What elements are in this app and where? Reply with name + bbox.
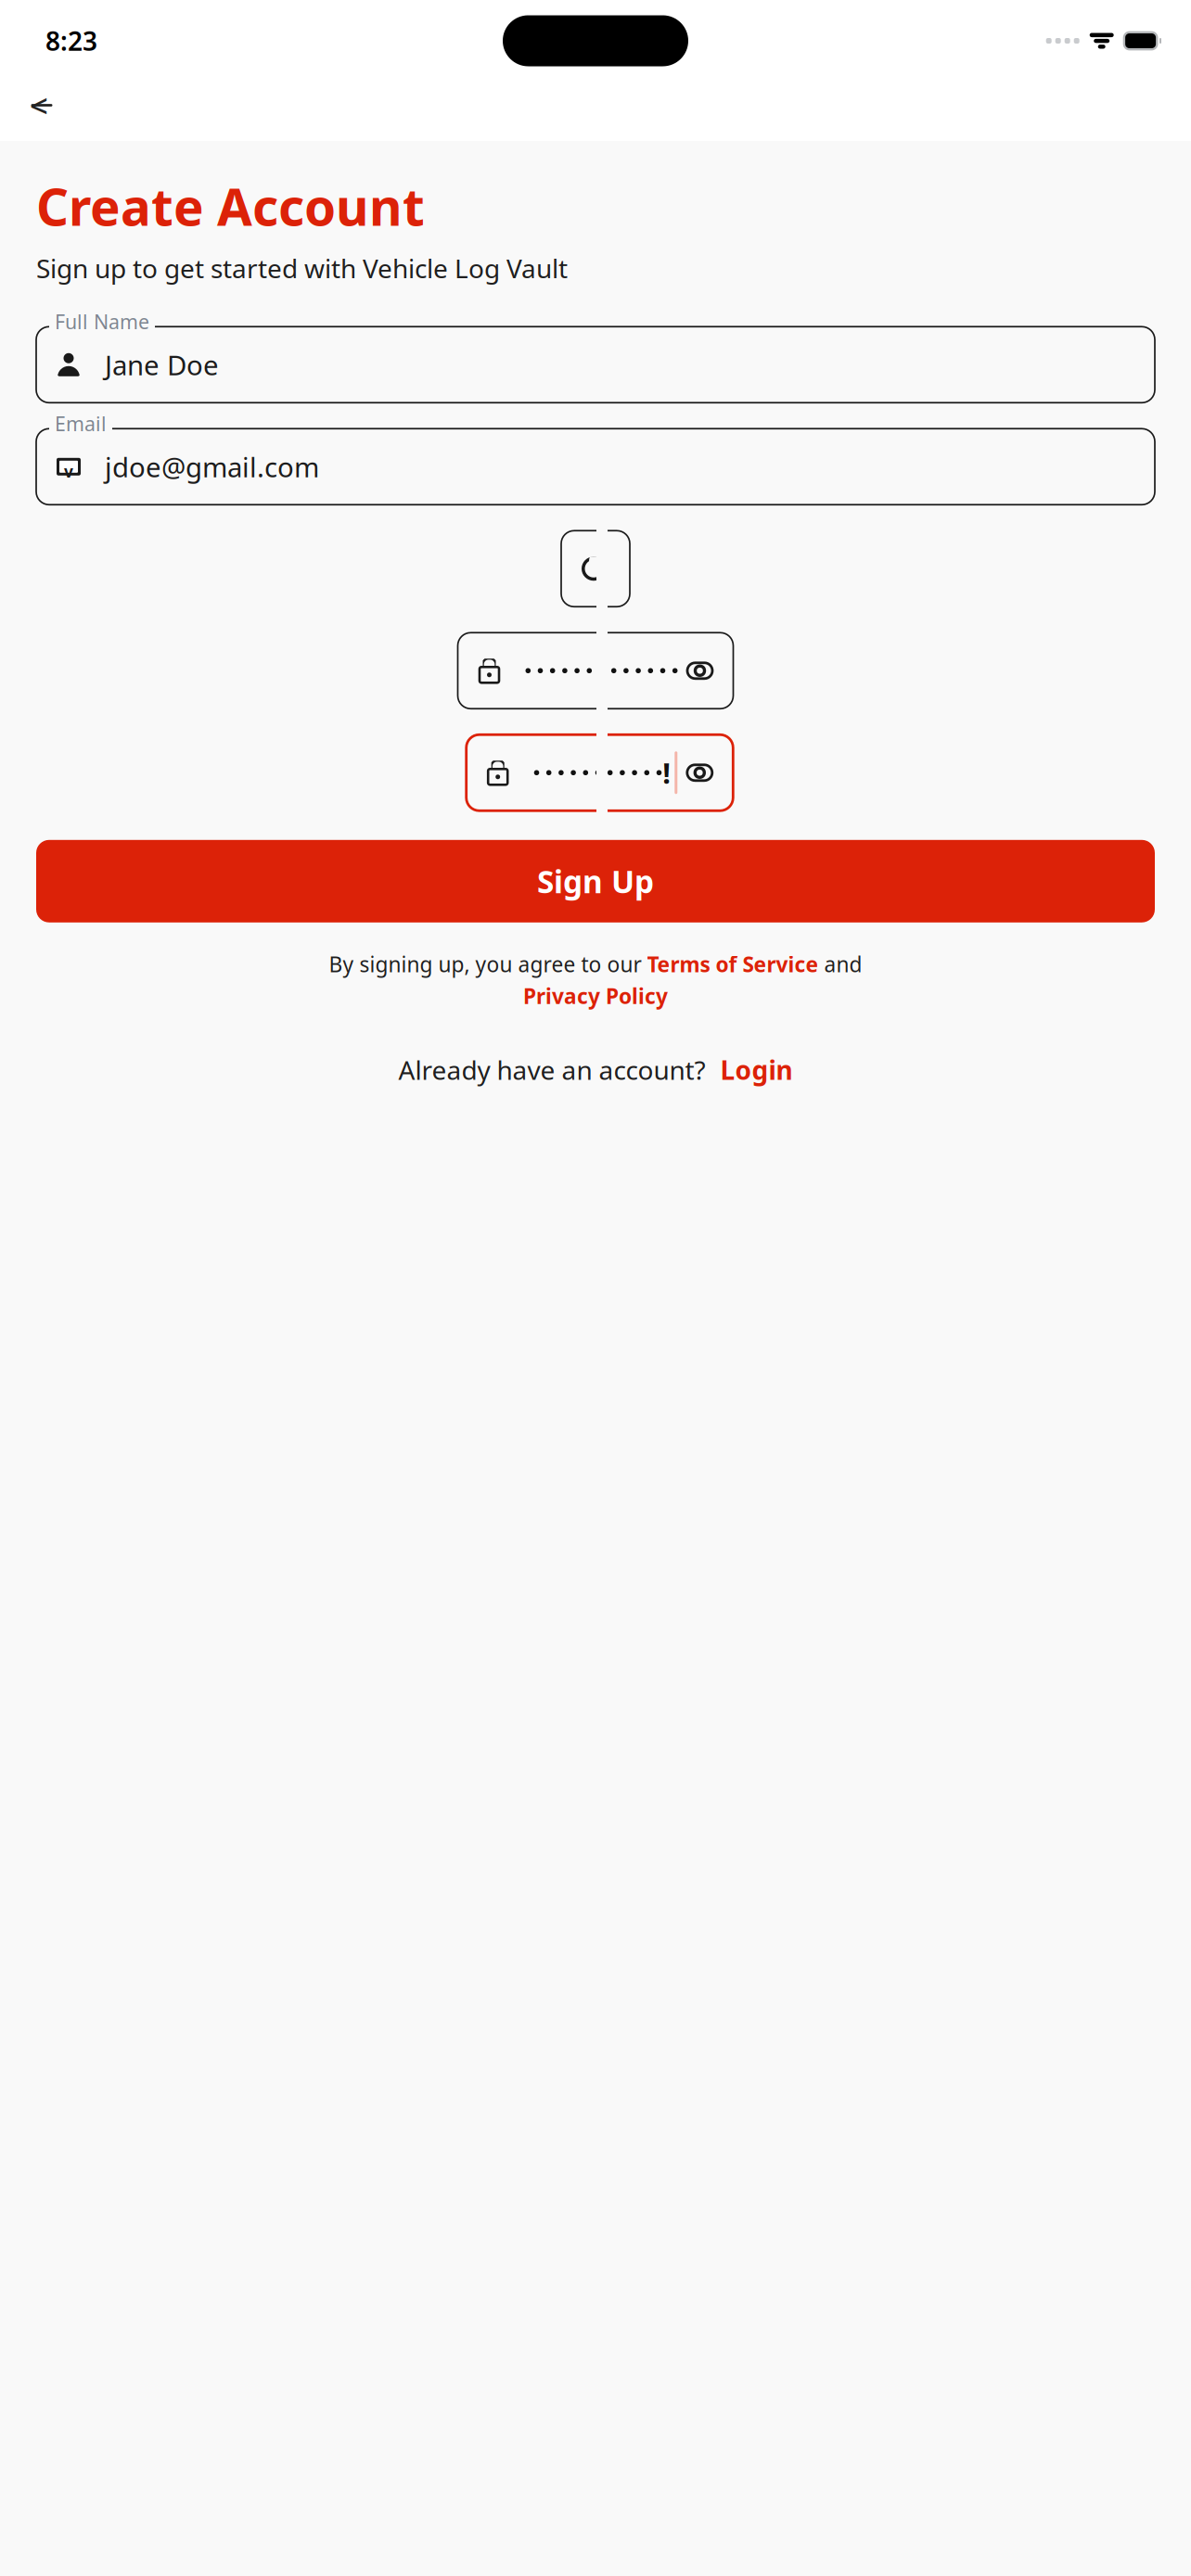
staticText: Login (720, 1052, 793, 1087)
staticText: Already have an account? (398, 1052, 705, 1087)
staticText: Email (55, 410, 107, 437)
staticText: Full Name (55, 308, 149, 335)
staticText: jdoe@gmail.com (105, 449, 319, 485)
staticText: Jane Doe (105, 347, 219, 383)
button[interactable]: Show password (678, 648, 722, 693)
staticText: Terms of Service (647, 950, 819, 978)
staticText: Privacy Policy (523, 982, 668, 1010)
button[interactable]: Privacy Policy (523, 982, 668, 1010)
staticText: v (64, 461, 73, 482)
staticText: Create Account (36, 172, 425, 240)
staticText: Sign up to get started with Vehicle Log … (36, 251, 568, 285)
button[interactable]: Sign Up (36, 840, 1155, 922)
staticText: Sign Up (537, 861, 654, 902)
button[interactable]: Back (16, 79, 68, 131)
button[interactable]: Login (720, 1052, 793, 1087)
staticText: By signing up, you agree to our (329, 950, 647, 978)
button[interactable]: Show password (677, 750, 722, 795)
staticText: and (819, 950, 862, 978)
button[interactable]: Terms of Service (647, 950, 819, 978)
staticText: < (30, 84, 48, 127)
staticText: ! (663, 754, 671, 792)
staticText: Email (55, 410, 107, 437)
staticText: 8:23 (45, 24, 97, 58)
staticText: Full Name (55, 308, 149, 335)
